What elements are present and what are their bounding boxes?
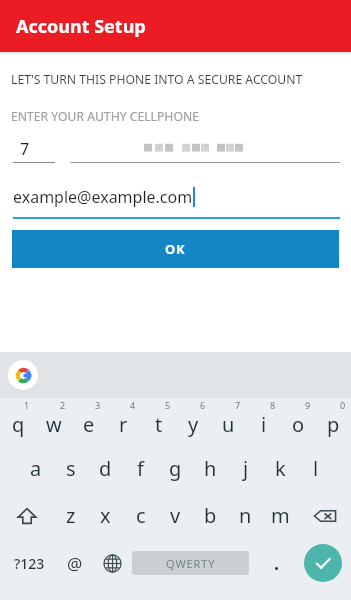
staticText: 4 — [130, 399, 136, 411]
staticText: OK — [165, 240, 186, 258]
button[interactable]: OK — [12, 230, 339, 268]
staticText: p — [327, 411, 340, 438]
staticText: ?123 — [14, 554, 45, 573]
staticText: 0 — [340, 399, 346, 411]
staticText: Account Setup — [16, 14, 146, 39]
staticText: u — [222, 411, 235, 438]
button[interactable]: j — [228, 445, 263, 492]
staticText: w — [46, 411, 62, 438]
button[interactable]: 7 — [0, 138, 56, 171]
staticText: g — [169, 455, 182, 482]
staticText: r — [119, 411, 128, 438]
staticText: f — [137, 455, 144, 482]
button[interactable]: ?123 — [0, 539, 58, 587]
staticText: b — [204, 502, 217, 529]
staticText: n — [239, 502, 252, 529]
button[interactable]: Google search — [8, 360, 38, 390]
staticText: d — [99, 455, 112, 482]
staticText: 6 — [200, 399, 206, 411]
button[interactable]: Change language — [92, 539, 132, 587]
button[interactable]: u — [211, 398, 246, 445]
button[interactable]: y — [176, 398, 211, 445]
staticText: 2 — [60, 399, 66, 411]
button[interactable]: v — [158, 492, 193, 539]
button[interactable]: Done — [304, 544, 342, 582]
staticText: . — [274, 551, 280, 576]
button[interactable]: e — [71, 398, 106, 445]
staticText: j — [243, 455, 249, 482]
button[interactable]: @ — [58, 539, 92, 587]
button[interactable]: o — [281, 398, 316, 445]
staticText: ENTER YOUR AUTHY CELLPHONE — [11, 108, 199, 125]
button[interactable]: l — [298, 445, 333, 492]
staticText: q — [12, 411, 25, 438]
staticText: e — [83, 411, 95, 438]
button[interactable]: f — [123, 445, 158, 492]
staticText: 3 — [95, 399, 101, 411]
button[interactable]: i — [246, 398, 281, 445]
button[interactable]: n — [228, 492, 263, 539]
button[interactable]: w — [36, 398, 71, 445]
staticText: i — [261, 411, 267, 438]
staticText: 1 — [24, 399, 30, 411]
staticText: a — [30, 455, 42, 482]
button[interactable]: g — [158, 445, 193, 492]
button[interactable]: z — [53, 492, 88, 539]
staticText: s — [66, 455, 76, 482]
button[interactable]: Account Setup — [0, 0, 351, 52]
staticText: h — [204, 455, 217, 482]
button[interactable]: c — [123, 492, 158, 539]
button[interactable]: k — [263, 445, 298, 492]
button[interactable]: Shift — [0, 492, 53, 539]
staticText: 5 — [165, 399, 171, 411]
button[interactable]: . — [249, 539, 304, 587]
staticText: m — [271, 502, 290, 529]
staticText: QWERTY — [166, 556, 216, 571]
staticText: y — [188, 411, 199, 438]
staticText: 7 — [20, 138, 30, 160]
staticText: k — [275, 455, 286, 482]
staticText: x — [100, 502, 111, 529]
staticText: c — [136, 502, 146, 529]
button[interactable]: q — [0, 398, 36, 445]
staticText: v — [170, 502, 181, 529]
button[interactable]: d — [88, 445, 123, 492]
staticText: LET'S TURN THIS PHONE INTO A SECURE ACCO… — [11, 71, 303, 88]
staticText: o — [292, 411, 305, 438]
staticText: @ — [67, 552, 83, 575]
button[interactable]: r — [106, 398, 141, 445]
button[interactable]: Backspace — [298, 492, 351, 539]
button[interactable] — [70, 138, 351, 171]
staticText: example@example.com — [13, 186, 193, 208]
button[interactable]: t — [141, 398, 176, 445]
staticText: 7 — [235, 399, 241, 411]
button[interactable]: p — [316, 398, 351, 445]
button[interactable]: h — [193, 445, 228, 492]
button[interactable]: x — [88, 492, 123, 539]
button[interactable]: example@example.com — [13, 185, 340, 219]
staticText: 8 — [270, 399, 276, 411]
staticText: z — [66, 502, 76, 529]
staticText: l — [313, 455, 319, 482]
button[interactable]: m — [263, 492, 298, 539]
staticText: t — [155, 411, 163, 438]
button[interactable]: a — [18, 445, 53, 492]
button[interactable]: s — [53, 445, 88, 492]
button[interactable]: QWERTY — [132, 551, 249, 575]
staticText: 9 — [305, 399, 311, 411]
button[interactable]: b — [193, 492, 228, 539]
